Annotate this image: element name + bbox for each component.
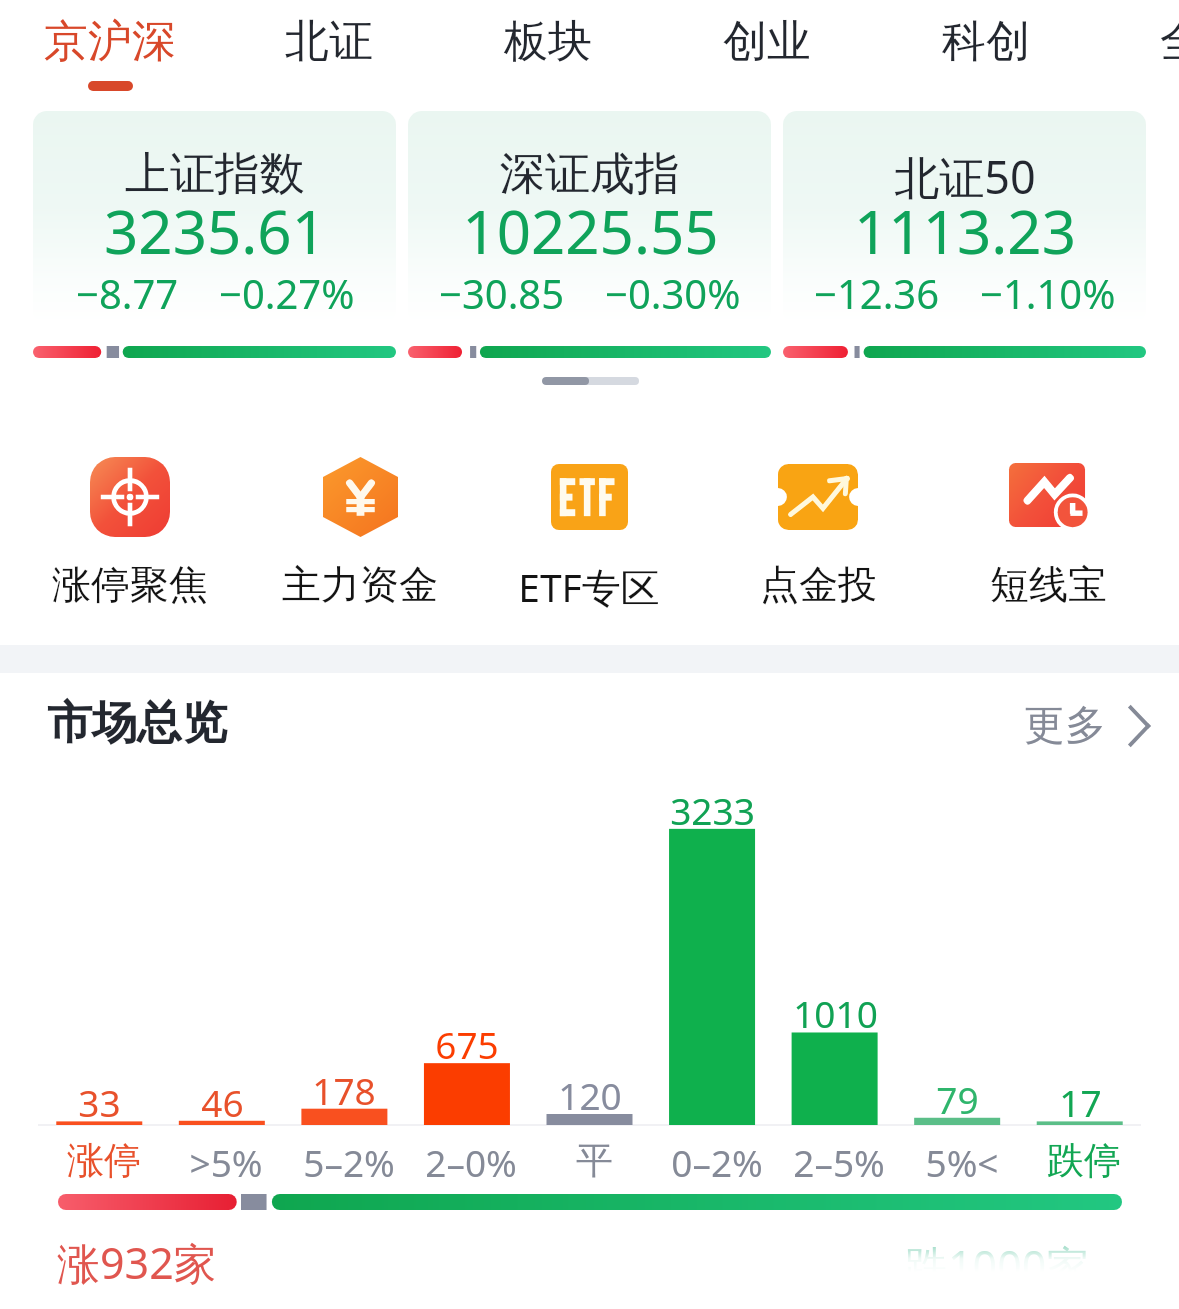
staticText: >5%: [189, 1137, 263, 1187]
staticText: 120: [558, 1070, 622, 1120]
staticText: 1113.23: [854, 190, 1076, 272]
staticText: 178: [312, 1065, 376, 1115]
staticText: 市场总览: [47, 695, 227, 752]
staticText: 全球: [1160, 14, 1179, 69]
other: 涨停聚焦: [90, 457, 170, 537]
staticText: 短线宝: [990, 560, 1107, 609]
staticText: 3235.61: [104, 190, 326, 272]
staticText: 更多: [1024, 700, 1106, 752]
button[interactable]: 京沪深: [1, 0, 219, 104]
staticText: 46: [201, 1077, 244, 1127]
button[interactable]: [408, 111, 771, 323]
staticText: 33: [78, 1077, 121, 1127]
other: 点金投: [778, 464, 858, 530]
button[interactable]: 更多: [1024, 700, 1150, 752]
staticText: 北证50: [894, 146, 1036, 207]
staticText: 北证: [285, 14, 373, 69]
button[interactable]: [33, 111, 396, 323]
button[interactable]: [783, 111, 1146, 323]
button[interactable]: 主力资金: [260, 448, 460, 608]
staticText: −0.27%: [219, 266, 355, 320]
button[interactable]: 短线宝: [948, 448, 1148, 608]
staticText: −1.10%: [980, 266, 1116, 320]
staticText: −30.85: [439, 266, 565, 320]
other: 短线宝: [1009, 460, 1097, 542]
staticText: 涨停聚焦: [52, 560, 208, 609]
staticText: 涨停: [67, 1137, 141, 1184]
staticText: 京沪深: [44, 14, 176, 69]
staticText: −0.30%: [605, 266, 741, 320]
button[interactable]: 板块: [439, 0, 657, 104]
staticText: 10225.55: [462, 190, 719, 272]
staticText: 主力资金: [282, 560, 438, 609]
staticText: 675: [435, 1019, 499, 1069]
button[interactable]: 创业: [658, 0, 876, 104]
staticText: 17: [1059, 1077, 1102, 1127]
staticText: 板块: [504, 14, 592, 69]
staticText: 科创: [942, 14, 1030, 69]
staticText: 79: [936, 1074, 979, 1124]
staticText: 跌停: [1047, 1137, 1121, 1184]
other: ETF专区: [551, 464, 628, 530]
staticText: ETF专区: [518, 560, 660, 613]
staticText: 5%<: [925, 1137, 999, 1187]
button[interactable]: ETF专区: [489, 448, 689, 608]
staticText: 1010: [793, 988, 878, 1038]
staticText: −12.36: [814, 266, 940, 320]
staticText: 3233: [670, 785, 755, 835]
staticText: 创业: [723, 14, 811, 69]
staticText: 平: [576, 1137, 613, 1184]
other: 主力资金: [323, 457, 398, 537]
staticText: 深证成指: [500, 146, 680, 203]
staticText: −8.77: [76, 266, 179, 320]
staticText: 2–5%: [793, 1137, 885, 1187]
staticText: 5–2%: [303, 1137, 395, 1187]
button[interactable]: 科创: [877, 0, 1095, 104]
button[interactable]: 点金投: [718, 448, 918, 608]
button[interactable]: 涨停聚焦: [30, 448, 230, 608]
staticText: 上证指数: [125, 146, 305, 203]
staticText: 0–2%: [671, 1137, 763, 1187]
staticText: 点金投: [760, 560, 877, 609]
staticText: 涨932家: [57, 1233, 217, 1292]
staticText: 跌1000家: [905, 1236, 1090, 1295]
button[interactable]: 北证: [220, 0, 438, 104]
button[interactable]: 全球: [1095, 0, 1179, 104]
staticText: 2–0%: [425, 1137, 517, 1187]
